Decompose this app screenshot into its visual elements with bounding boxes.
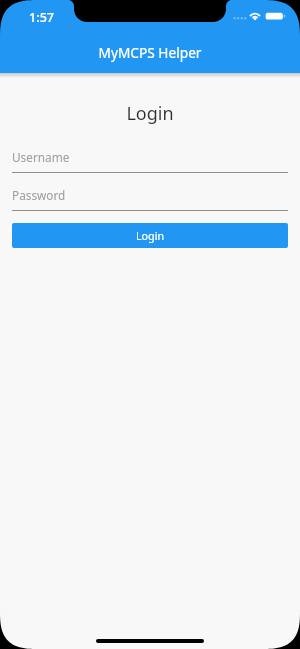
staticText: 1:57 <box>29 9 55 26</box>
other: Home indicator <box>96 639 204 643</box>
staticText: MyMCPS Helper <box>0 43 300 62</box>
staticText: Password <box>12 187 66 203</box>
staticText: Login <box>0 101 300 126</box>
staticText: Username <box>12 149 70 165</box>
button[interactable]: Login <box>12 223 288 248</box>
staticText: Login <box>136 229 165 244</box>
